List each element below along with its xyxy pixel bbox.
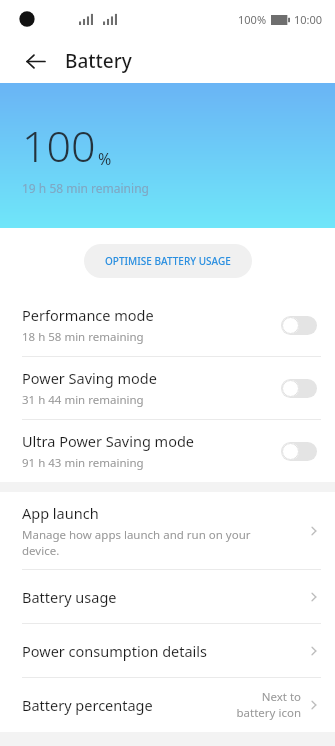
staticText: 19 h 58 min remaining [22, 180, 149, 196]
button[interactable]: Toggle [281, 379, 317, 398]
staticText: Next to battery icon [236, 689, 301, 720]
staticText: 18 h 58 min remaining [22, 329, 144, 345]
staticText: 100% [238, 12, 267, 27]
button[interactable]: Ultra Power Saving mode [0, 420, 335, 482]
button[interactable]: Battery usage [0, 570, 335, 623]
staticText: Battery usage [22, 587, 117, 607]
button[interactable]: Power Saving mode [0, 357, 335, 419]
button[interactable]: OPTIMISE BATTERY USAGE [84, 244, 252, 278]
staticText: Ultra Power Saving mode [22, 431, 195, 451]
button[interactable]: Back [18, 44, 52, 78]
button[interactable]: App launch [0, 492, 335, 569]
staticText: 100 [22, 116, 96, 175]
staticText: Power Saving mode [22, 368, 157, 388]
staticText: Performance mode [22, 305, 154, 325]
staticText: 10:00 [294, 12, 323, 27]
button[interactable]: Performance mode [0, 294, 335, 356]
staticText: Manage how apps launch and run on your d… [22, 527, 251, 558]
staticText: Battery [65, 48, 132, 74]
button[interactable]: Toggle [281, 442, 317, 461]
button[interactable]: Power consumption details [0, 624, 335, 677]
button[interactable]: Toggle [281, 316, 317, 335]
button[interactable]: Battery percentage [0, 678, 335, 731]
staticText: App launch [22, 503, 99, 523]
staticText: Battery percentage [22, 695, 153, 715]
staticText: OPTIMISE BATTERY USAGE [105, 254, 231, 268]
staticText: 91 h 43 min remaining [22, 455, 144, 471]
staticText: % [98, 148, 112, 170]
staticText: 31 h 44 min remaining [22, 392, 144, 408]
staticText: Power consumption details [22, 641, 208, 661]
